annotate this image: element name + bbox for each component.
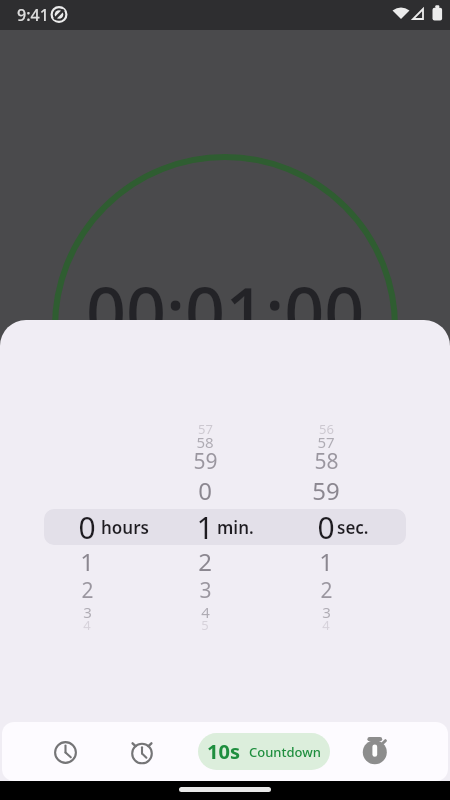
staticText: 58 bbox=[196, 432, 214, 452]
staticText: 59 bbox=[312, 474, 340, 507]
staticText: 2 bbox=[198, 545, 212, 578]
staticText: 5 bbox=[201, 616, 209, 634]
staticText: 4 bbox=[201, 602, 210, 622]
staticText: sec. bbox=[337, 516, 369, 539]
staticText: 4 bbox=[322, 616, 330, 634]
staticText: 2 bbox=[320, 576, 333, 605]
staticText: 1 bbox=[80, 545, 94, 578]
staticText: 57 bbox=[317, 432, 335, 452]
staticText: hours bbox=[101, 516, 149, 539]
staticText: 3 bbox=[199, 576, 212, 605]
staticText: 56 bbox=[319, 420, 334, 438]
staticText: 1 bbox=[196, 507, 214, 548]
staticText: 2 bbox=[81, 576, 94, 605]
staticText: 0 bbox=[317, 507, 335, 548]
staticText: 9:41 bbox=[17, 4, 49, 26]
staticText: 10s bbox=[207, 738, 240, 765]
staticText: 3 bbox=[83, 602, 92, 622]
staticText: 0 bbox=[198, 474, 212, 507]
staticText: 4 bbox=[83, 616, 91, 634]
staticText: 00:01:00 bbox=[86, 264, 365, 348]
staticText: 1 bbox=[319, 545, 333, 578]
staticText: min. bbox=[217, 516, 254, 539]
staticText: 58 bbox=[314, 447, 339, 476]
staticText: Countdown bbox=[249, 743, 321, 761]
staticText: 0 bbox=[78, 507, 96, 548]
staticText: 3 bbox=[322, 602, 331, 622]
staticText: 59 bbox=[193, 447, 218, 476]
staticText: 57 bbox=[198, 420, 213, 438]
